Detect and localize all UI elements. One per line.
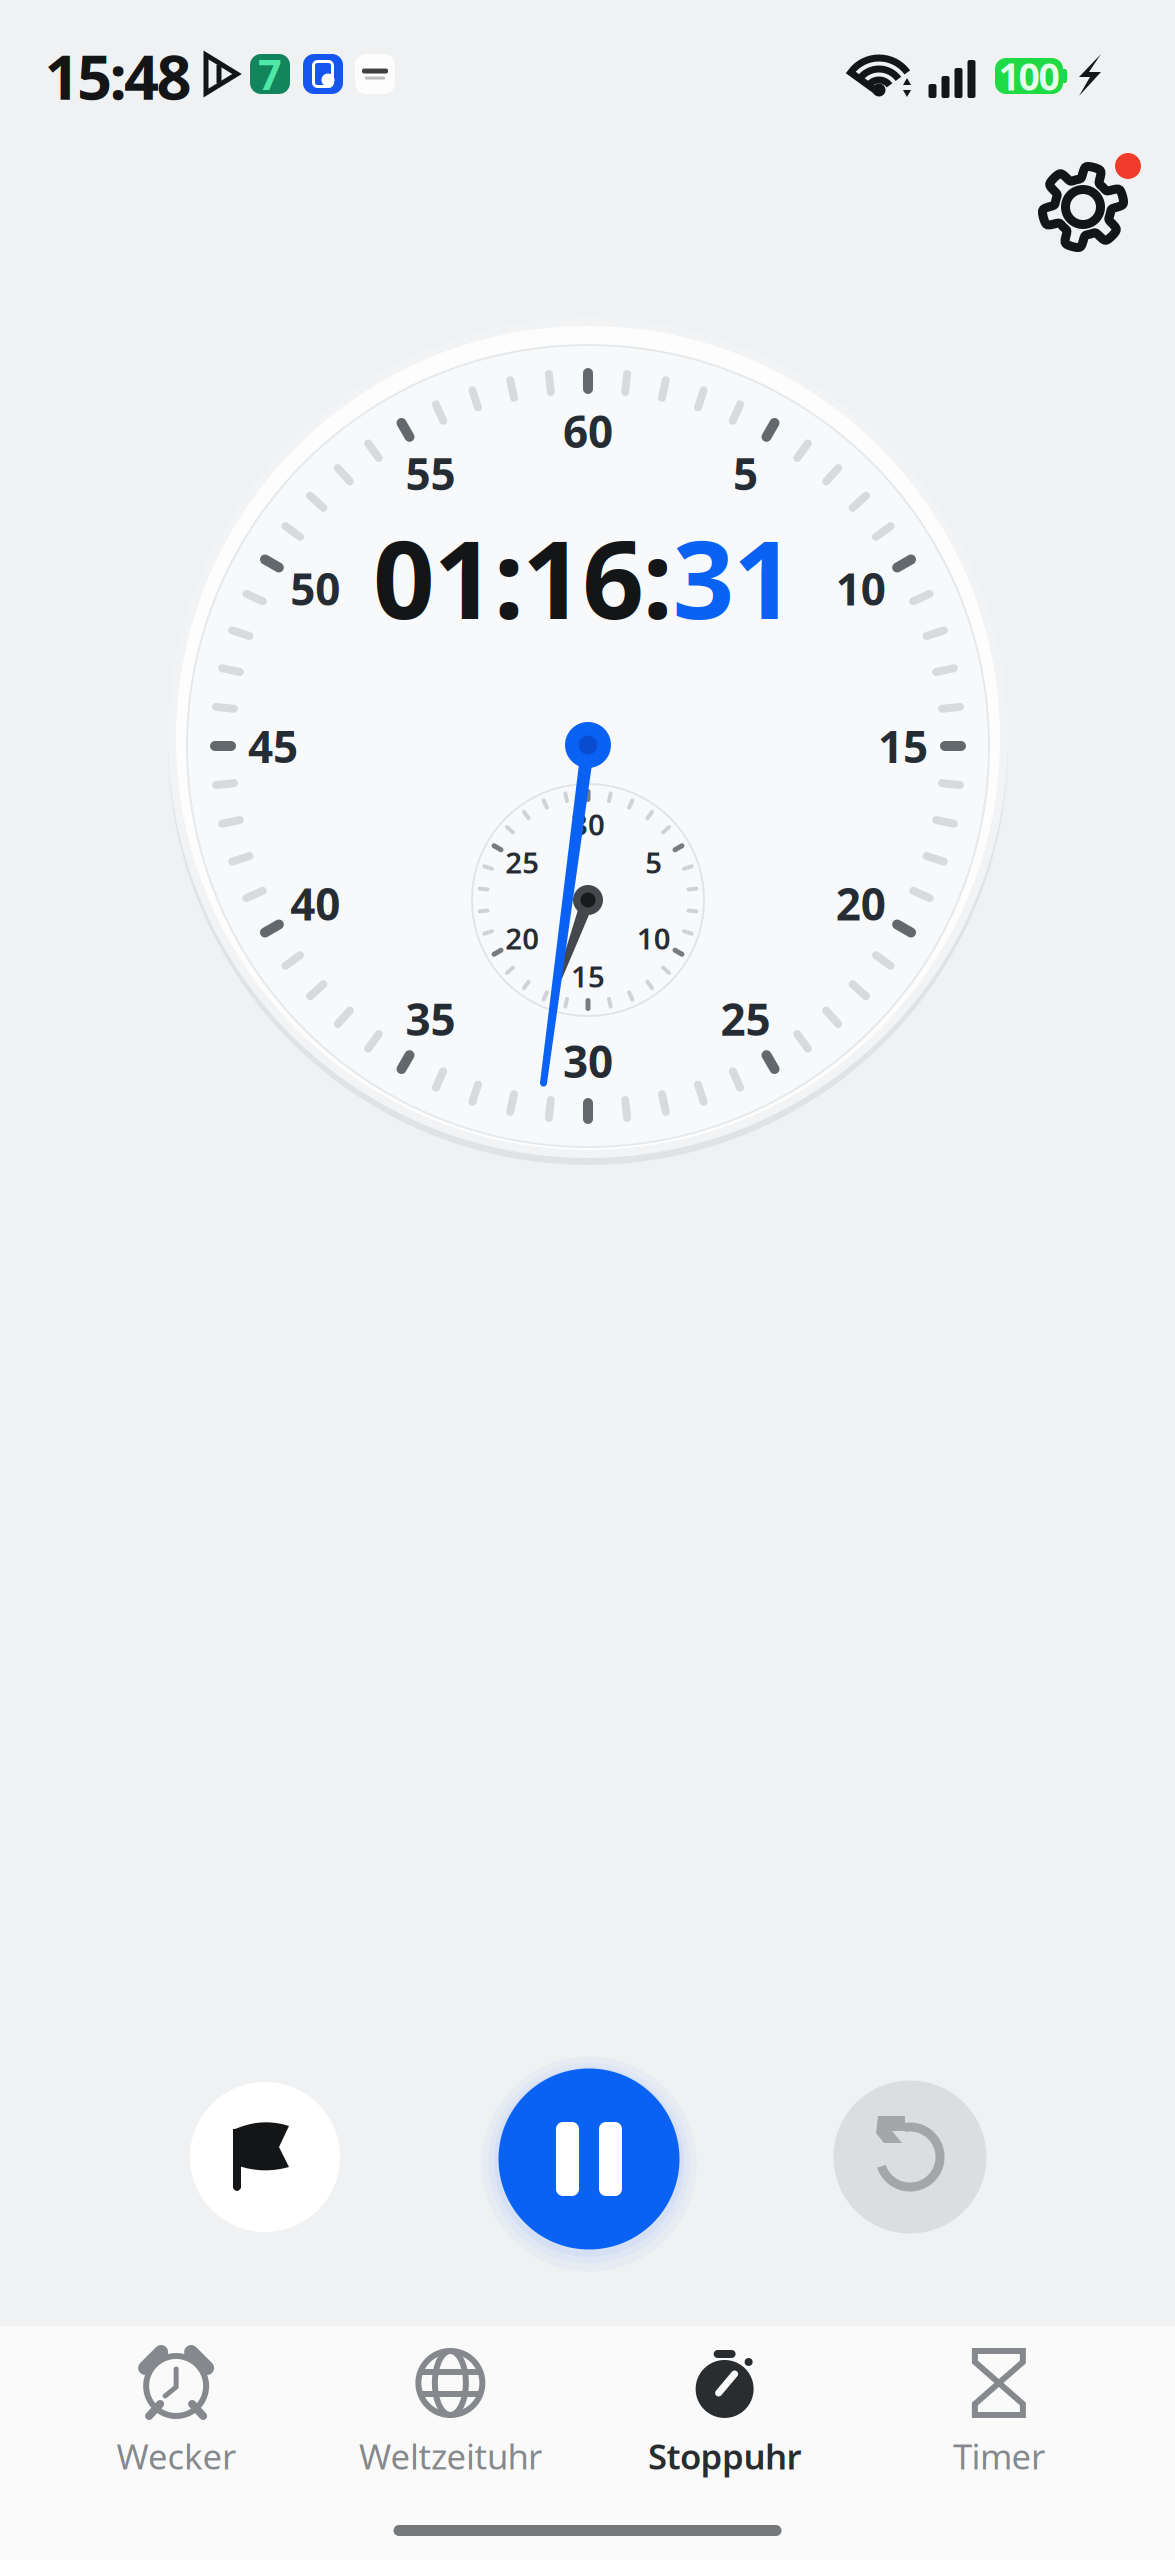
- staticText: 30: [571, 804, 605, 843]
- staticText: 35: [405, 990, 455, 1048]
- button[interactable]: Einstellungen: [1023, 147, 1143, 267]
- button[interactable]: Weltzeituhr: [313, 2326, 587, 2494]
- staticText: 60: [563, 402, 613, 460]
- staticText: 100: [998, 51, 1059, 101]
- button[interactable]: Pause: [498, 2068, 679, 2249]
- button[interactable]: Runde: [190, 2082, 340, 2232]
- staticText: 15: [878, 717, 928, 775]
- staticText: 30: [563, 1032, 613, 1090]
- button[interactable]: Zurücksetzen: [833, 2080, 986, 2233]
- staticText: 20: [505, 918, 539, 957]
- staticText: 10: [637, 918, 671, 957]
- staticText: 15: [571, 956, 605, 995]
- staticText: 20: [836, 874, 886, 933]
- staticText: 25: [720, 990, 770, 1048]
- staticText: Timer: [953, 2433, 1045, 2479]
- staticText: 55: [405, 444, 455, 502]
- staticText: 31: [673, 505, 795, 649]
- staticText: 7: [258, 47, 282, 101]
- staticText: Wecker: [116, 2433, 236, 2479]
- staticText: 10: [836, 559, 886, 618]
- staticText: Weltzeituhr: [359, 2433, 542, 2479]
- staticText: 50: [290, 559, 340, 618]
- button[interactable]: Stoppuhr: [587, 2326, 862, 2494]
- staticText: 45: [248, 717, 298, 775]
- button[interactable]: Timer: [862, 2326, 1136, 2494]
- staticText: 15:48: [44, 35, 191, 117]
- button[interactable]: Wecker: [39, 2326, 313, 2494]
- staticText: Stoppuhr: [648, 2433, 801, 2479]
- staticText: 25: [505, 842, 539, 881]
- staticText: 5: [645, 842, 662, 881]
- staticText: 5: [733, 444, 758, 502]
- staticText: 40: [290, 874, 340, 933]
- staticText: 01:16:: [373, 505, 673, 649]
